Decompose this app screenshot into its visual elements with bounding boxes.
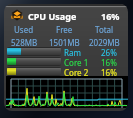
staticText: Total (95, 24, 114, 35)
button[interactable]: Core 1 (4, 57, 128, 67)
staticText: Free (56, 24, 73, 35)
staticText: 1501MB (49, 37, 80, 48)
staticText: 2029MB (89, 37, 120, 48)
staticText: Used (14, 24, 34, 35)
staticText: Core 2 (64, 67, 89, 77)
staticText: CPU Usage (28, 10, 77, 22)
button[interactable]: CPU (4, 4, 128, 111)
staticText: 528MB (11, 37, 38, 48)
staticText: Ram (64, 47, 81, 57)
staticText: 16% (101, 67, 117, 77)
staticText: 16% (101, 10, 120, 22)
staticText: 26% (101, 47, 117, 57)
button[interactable]: Core 2 (4, 67, 128, 77)
staticText: Core 1 (64, 57, 89, 67)
button[interactable]: CPU (11, 9, 23, 21)
staticText: 16% (101, 57, 117, 67)
button[interactable]: Ram (4, 47, 128, 57)
